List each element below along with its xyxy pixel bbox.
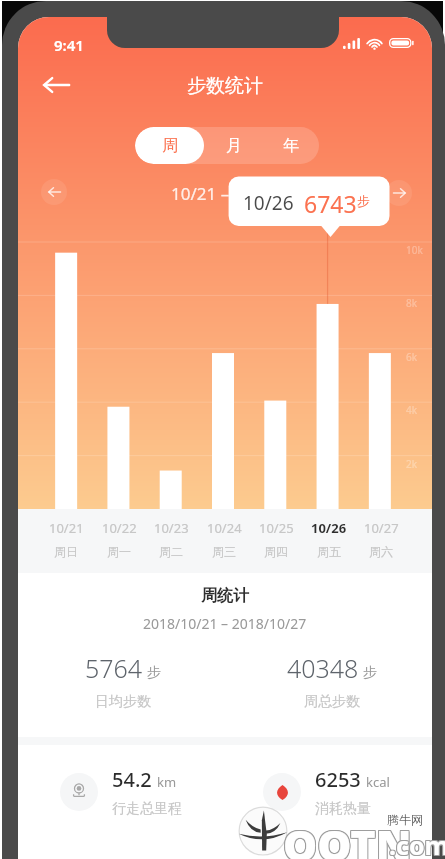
staticText: .com <box>389 827 445 859</box>
staticText: QQTN <box>283 816 412 859</box>
button[interactable]: Previous week <box>41 179 67 205</box>
staticText: QQTN <box>284 816 413 859</box>
staticText: 周 <box>162 136 178 156</box>
staticText: QQTN <box>282 816 411 859</box>
staticText: 月 <box>226 136 242 156</box>
staticText: QQTN <box>282 814 411 859</box>
staticText: 周六 <box>369 544 393 559</box>
staticText: 10/21 – 10/27 <box>171 182 279 205</box>
staticText: 周一 <box>107 544 131 559</box>
staticText: 步 <box>363 664 377 682</box>
staticText: 周二 <box>159 544 183 559</box>
staticText: .com <box>390 829 445 859</box>
staticText: 步 <box>357 193 370 209</box>
button[interactable]: 54.2 <box>60 766 182 818</box>
staticText: 5764 <box>85 651 143 685</box>
staticText: 40348 <box>287 651 359 685</box>
staticText: .com <box>389 828 445 859</box>
staticText: 54.2 <box>112 766 152 793</box>
staticText: 10/21 <box>49 519 84 537</box>
staticText: 10/23 <box>154 519 189 537</box>
staticText: 步数统计 <box>187 74 263 96</box>
staticText: 周统计 <box>201 586 249 606</box>
staticText: QQTN <box>282 815 411 859</box>
staticText: 9:41 <box>54 35 84 55</box>
staticText: 10k <box>406 243 423 257</box>
staticText: 10/27 <box>364 519 399 537</box>
staticText: .com <box>388 829 445 859</box>
staticText: 消耗热量 <box>315 800 371 818</box>
staticText: kcal <box>366 773 390 791</box>
button[interactable]: 周 <box>135 127 204 164</box>
staticText: .com <box>388 828 445 859</box>
staticText: 6k <box>406 350 418 364</box>
staticText: .com <box>390 827 445 859</box>
staticText: 10/25 <box>259 519 294 537</box>
staticText: 10/26 <box>311 519 347 537</box>
staticText: 周日 <box>54 544 78 559</box>
staticText: 腾牛网 <box>387 812 423 827</box>
button[interactable]: 6253 <box>263 766 390 818</box>
staticText: 周三 <box>212 544 236 559</box>
staticText: 10/22 <box>102 519 137 537</box>
staticText: 6743 <box>304 188 357 214</box>
staticText: QQTN <box>284 815 413 859</box>
staticText: 周五 <box>317 544 341 559</box>
staticText: 2018/10/21 – 2018/10/27 <box>143 614 307 633</box>
staticText: 6253 <box>315 766 361 793</box>
staticText: 周总步数 <box>304 693 360 711</box>
staticText: 2k <box>406 457 418 471</box>
staticText: .com <box>390 828 445 859</box>
staticText: QQTN <box>284 814 413 859</box>
staticText: 10/24 <box>207 519 242 537</box>
staticText: QQTN <box>283 814 412 859</box>
staticText: 年 <box>283 136 299 156</box>
button[interactable]: Next week <box>386 180 412 206</box>
button[interactable]: 月 <box>204 127 263 164</box>
staticText: .com <box>388 827 445 859</box>
staticText: 周四 <box>264 544 288 559</box>
staticText: km <box>157 773 177 791</box>
staticText: 日均步数 <box>95 693 151 711</box>
staticText: QQTN <box>283 815 412 859</box>
button[interactable]: 年 <box>263 127 319 164</box>
button[interactable]: Back <box>33 63 79 107</box>
staticText: 行走总里程 <box>112 800 182 818</box>
staticText: 8k <box>406 296 418 310</box>
staticText: 10/26 <box>243 190 294 212</box>
staticText: .com <box>389 829 445 859</box>
staticText: 4k <box>406 403 418 417</box>
staticText: 步 <box>147 664 161 682</box>
